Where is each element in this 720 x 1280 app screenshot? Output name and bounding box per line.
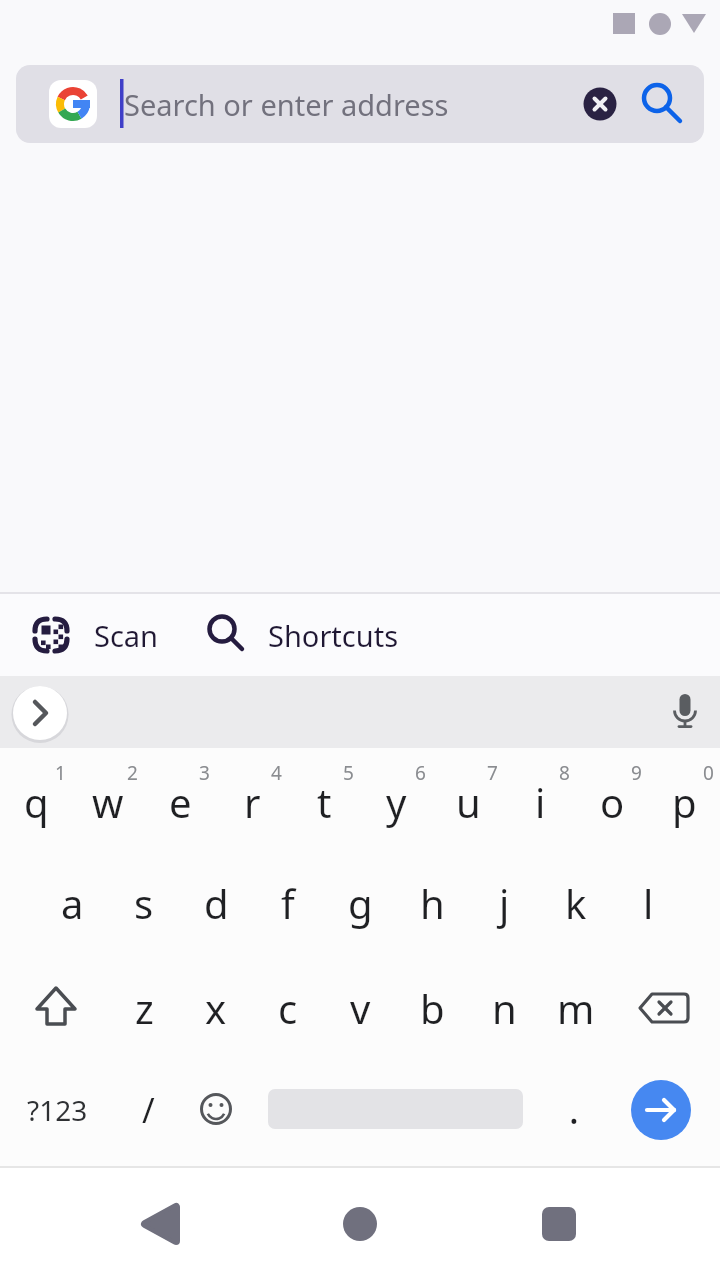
button[interactable]: o — [576, 768, 648, 836]
button[interactable]: e — [144, 768, 216, 836]
button[interactable] — [180, 1074, 252, 1146]
staticText: Shortcuts — [268, 616, 399, 655]
button[interactable]: p — [648, 768, 720, 836]
button[interactable]: b — [396, 974, 468, 1042]
staticText: x — [205, 981, 227, 1035]
button[interactable]: w — [72, 768, 144, 836]
staticText: 2 — [127, 760, 138, 786]
button[interactable] — [529, 1194, 589, 1254]
staticText: u — [456, 775, 481, 829]
button[interactable]: t — [288, 768, 360, 836]
staticText: d — [204, 876, 229, 930]
staticText: 3 — [199, 760, 210, 786]
staticText: j — [499, 876, 510, 930]
staticText: m — [557, 981, 595, 1035]
button[interactable]: l — [612, 869, 684, 937]
button[interactable] — [626, 972, 698, 1044]
staticText: y — [386, 775, 407, 829]
button[interactable]: a — [36, 869, 108, 937]
button[interactable]: Scan — [32, 594, 159, 676]
button[interactable] — [664, 688, 708, 736]
staticText: 7 — [487, 760, 498, 786]
staticText: 9 — [631, 760, 642, 786]
button[interactable]: c — [252, 974, 324, 1042]
button[interactable] — [13, 686, 67, 740]
button[interactable]: k — [540, 869, 612, 937]
button[interactable]: Shortcuts — [200, 594, 399, 676]
staticText: 4 — [271, 760, 282, 786]
staticText: . — [569, 1086, 579, 1135]
staticText: b — [420, 981, 445, 1035]
button[interactable]: d — [180, 869, 252, 937]
staticText: o — [600, 775, 625, 829]
button[interactable]: q — [0, 768, 72, 836]
staticText: r — [244, 775, 261, 829]
button[interactable]: y — [360, 768, 432, 836]
staticText: 1 — [55, 760, 66, 786]
staticText: 5 — [343, 760, 354, 786]
button[interactable]: z — [108, 974, 180, 1042]
button[interactable] — [20, 972, 92, 1044]
button[interactable]: / — [112, 1076, 184, 1144]
button[interactable]: . — [546, 1076, 602, 1144]
staticText: w — [92, 775, 124, 829]
staticText: ?123 — [27, 1091, 88, 1129]
staticText: 6 — [415, 760, 426, 786]
button[interactable]: v — [324, 974, 396, 1042]
staticText: 8 — [559, 760, 570, 786]
staticText: k — [565, 876, 587, 930]
button[interactable]: g — [324, 869, 396, 937]
staticText: / — [142, 1087, 155, 1133]
staticText: e — [169, 775, 192, 829]
button[interactable] — [130, 1194, 190, 1254]
staticText: s — [134, 876, 154, 930]
button[interactable] — [330, 1194, 390, 1254]
button[interactable]: f — [252, 869, 324, 937]
button[interactable]: r — [216, 768, 288, 836]
staticText: a — [61, 876, 84, 930]
button[interactable]: j — [468, 869, 540, 937]
staticText: l — [643, 876, 654, 930]
staticText: p — [672, 775, 697, 829]
button[interactable]: u — [432, 768, 504, 836]
button[interactable]: ?123 — [16, 1076, 98, 1144]
staticText: h — [420, 876, 445, 930]
button[interactable]: i — [504, 768, 576, 836]
staticText: f — [281, 876, 295, 930]
staticText: i — [535, 775, 546, 829]
staticText: n — [492, 981, 517, 1035]
staticText: Search or enter address — [124, 85, 449, 124]
button[interactable]: x — [180, 974, 252, 1042]
button[interactable]: m — [540, 974, 612, 1042]
staticText: g — [348, 876, 373, 930]
staticText: q — [24, 775, 49, 829]
button[interactable]: n — [468, 974, 540, 1042]
staticText: c — [278, 981, 298, 1035]
button[interactable]: h — [396, 869, 468, 937]
staticText: 0 — [703, 760, 714, 786]
staticText: z — [135, 981, 154, 1035]
button[interactable] — [631, 1080, 691, 1140]
staticText: t — [317, 775, 332, 829]
button[interactable]: Search or enter address — [16, 65, 704, 143]
staticText: Scan — [94, 616, 159, 655]
button[interactable]: s — [108, 869, 180, 937]
staticText: v — [350, 981, 371, 1035]
